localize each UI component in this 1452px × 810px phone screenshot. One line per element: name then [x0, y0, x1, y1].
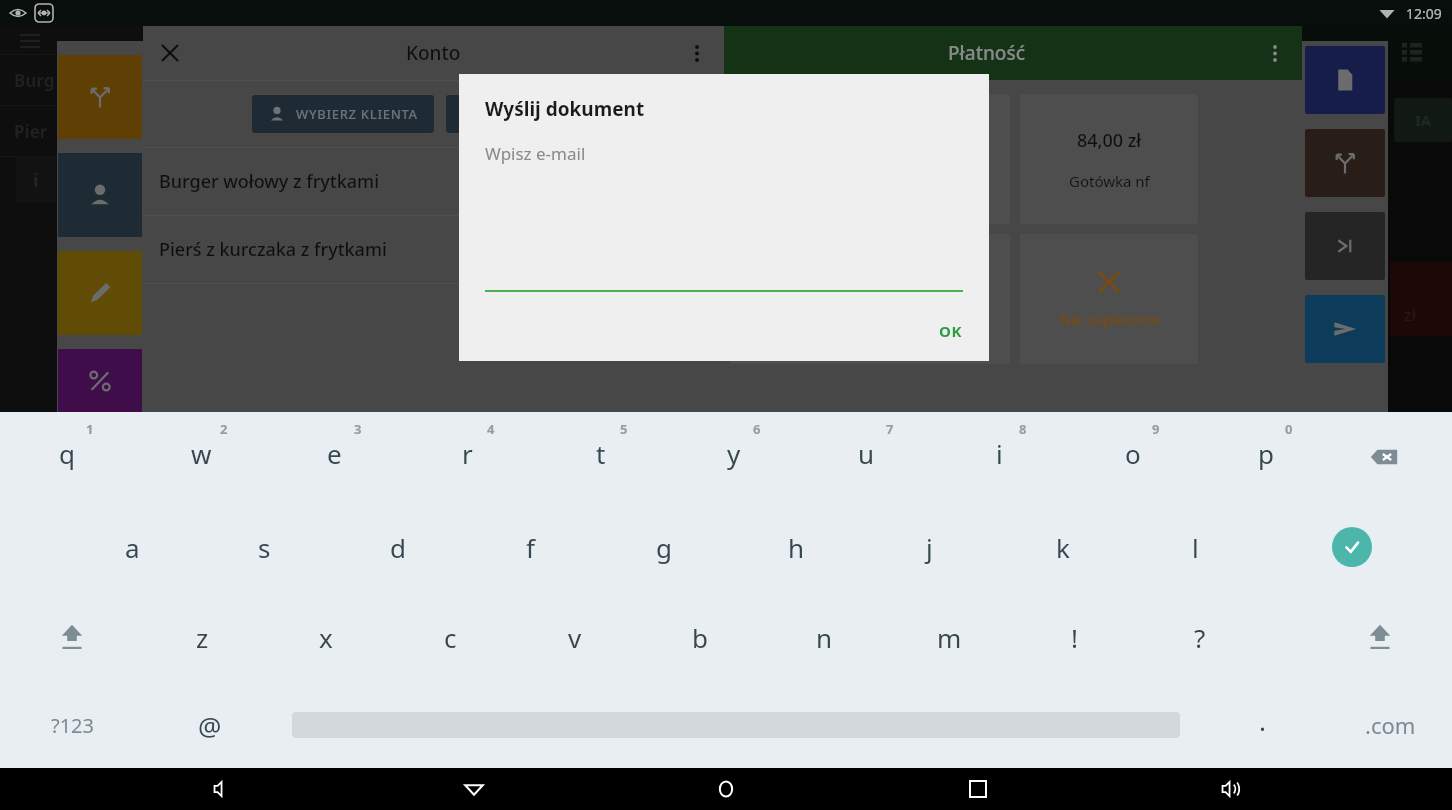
button[interactable]: Przycisk akcji: [1305, 295, 1385, 363]
button[interactable]: Akcja: [58, 251, 142, 335]
button[interactable]: g: [597, 502, 730, 592]
button[interactable]: Ostatnie: [948, 768, 1008, 810]
staticText: OK: [939, 321, 963, 341]
staticText: WYBIERZ KLIENTA: [296, 105, 418, 123]
button[interactable]: s: [198, 502, 331, 592]
staticText: w: [191, 436, 212, 471]
staticText: !: [1071, 620, 1078, 655]
staticText: Wyślij dokument: [485, 96, 645, 122]
button[interactable]: a: [66, 502, 198, 592]
button[interactable]: Shift: [40, 607, 104, 667]
staticText: i: [996, 436, 1003, 471]
staticText: ?: [1194, 620, 1206, 655]
button[interactable]: k: [996, 502, 1129, 592]
staticText: b: [692, 620, 708, 655]
button[interactable]: ?: [1137, 592, 1262, 682]
staticText: Wpisz e-mail: [485, 142, 586, 165]
button[interactable]: l: [1129, 502, 1262, 592]
button[interactable]: ?123: [40, 695, 104, 755]
staticText: r: [462, 436, 473, 471]
staticText: 8: [1019, 420, 1027, 438]
staticText: c: [444, 620, 457, 655]
button[interactable]: Backspace: [1354, 427, 1414, 487]
button[interactable]: x: [264, 592, 388, 682]
button[interactable]: f: [464, 502, 597, 592]
button[interactable]: z: [140, 592, 264, 682]
button[interactable]: Ciszej: [192, 768, 252, 810]
button[interactable]: 8: [933, 412, 1066, 502]
button[interactable]: Karta płatnicza: [730, 94, 1010, 224]
staticText: Pier: [14, 120, 48, 143]
button[interactable]: Przycisk akcji: [1305, 46, 1385, 114]
button[interactable]: Enter: [1332, 527, 1372, 567]
button[interactable]: 9: [1066, 412, 1199, 502]
button[interactable]: j: [863, 502, 996, 592]
staticText: .com: [1365, 710, 1416, 740]
button[interactable]: 2: [134, 412, 268, 502]
button[interactable]: h: [730, 502, 863, 592]
button[interactable]: Więcej opcji: [670, 26, 724, 80]
staticText: Płatność: [948, 40, 1025, 66]
button[interactable]: Burger wołowy z frytkami: [143, 148, 724, 215]
button[interactable]: [446, 95, 616, 133]
button[interactable]: 84,00 zł: [1020, 94, 1198, 224]
staticText: d: [390, 530, 406, 565]
staticText: 9: [1152, 420, 1160, 438]
button[interactable]: !: [1012, 592, 1137, 682]
staticText: IA: [1415, 110, 1432, 130]
button[interactable]: 5: [534, 412, 667, 502]
button[interactable]: Akcja: [58, 153, 142, 237]
button[interactable]: Shift: [1348, 607, 1412, 667]
button[interactable]: d: [331, 502, 464, 592]
button[interactable]: 6: [667, 412, 800, 502]
button[interactable]: @: [180, 695, 240, 755]
staticText: i: [33, 168, 39, 193]
button[interactable]: Nie zapłacono: [1020, 234, 1198, 364]
staticText: t: [596, 436, 606, 471]
staticText: Burg: [14, 69, 55, 92]
button[interactable]: Pierś z kurczaka z frytkami: [143, 216, 724, 283]
button[interactable]: v: [512, 592, 637, 682]
staticText: Konto: [406, 40, 461, 66]
button[interactable]: OK: [913, 309, 989, 353]
button[interactable]: Ekran główny: [696, 768, 756, 810]
staticText: e: [327, 436, 342, 471]
button[interactable]: .com: [1357, 695, 1424, 755]
button[interactable]: Więcej opcji płatności: [1248, 26, 1302, 80]
button[interactable]: m: [887, 592, 1012, 682]
staticText: y: [727, 436, 741, 471]
button[interactable]: 0: [1199, 412, 1332, 502]
staticText: g: [656, 530, 672, 565]
button[interactable]: Wstecz: [444, 768, 504, 810]
staticText: s: [258, 530, 271, 565]
staticText: p: [1258, 436, 1274, 471]
staticText: zł: [1404, 304, 1416, 326]
button[interactable]: .: [1232, 695, 1292, 755]
button[interactable]: WYBIERZ KLIENTA: [252, 95, 434, 133]
button[interactable]: Przycisk akcji: [1305, 212, 1385, 280]
button[interactable]: 7: [800, 412, 933, 502]
button[interactable]: n: [762, 592, 887, 682]
staticText: 84,00 zł: [1077, 128, 1142, 153]
staticText: Pierś z kurczaka z frytkami: [159, 237, 682, 262]
staticText: j: [926, 530, 933, 565]
button[interactable]: Akcja: [58, 349, 142, 412]
button[interactable]: Głośniej: [1200, 768, 1260, 810]
button[interactable]: c: [388, 592, 512, 682]
staticText: h: [788, 530, 805, 565]
button[interactable]: 1: [0, 412, 134, 502]
button[interactable]: Wpisz e-mail: [485, 142, 963, 292]
staticText: z: [196, 620, 209, 655]
button[interactable]: 4: [401, 412, 534, 502]
button[interactable]: 3: [268, 412, 401, 502]
button[interactable]: Przycisk akcji: [1305, 129, 1385, 197]
staticText: Nie zapłacono: [1059, 309, 1160, 329]
button[interactable]: 19,67 EUR: [730, 234, 1010, 364]
button[interactable]: Akcja: [58, 55, 142, 139]
button[interactable]: Zamknij: [143, 26, 197, 80]
staticText: 0: [1285, 420, 1293, 438]
button[interactable]: b: [637, 592, 762, 682]
